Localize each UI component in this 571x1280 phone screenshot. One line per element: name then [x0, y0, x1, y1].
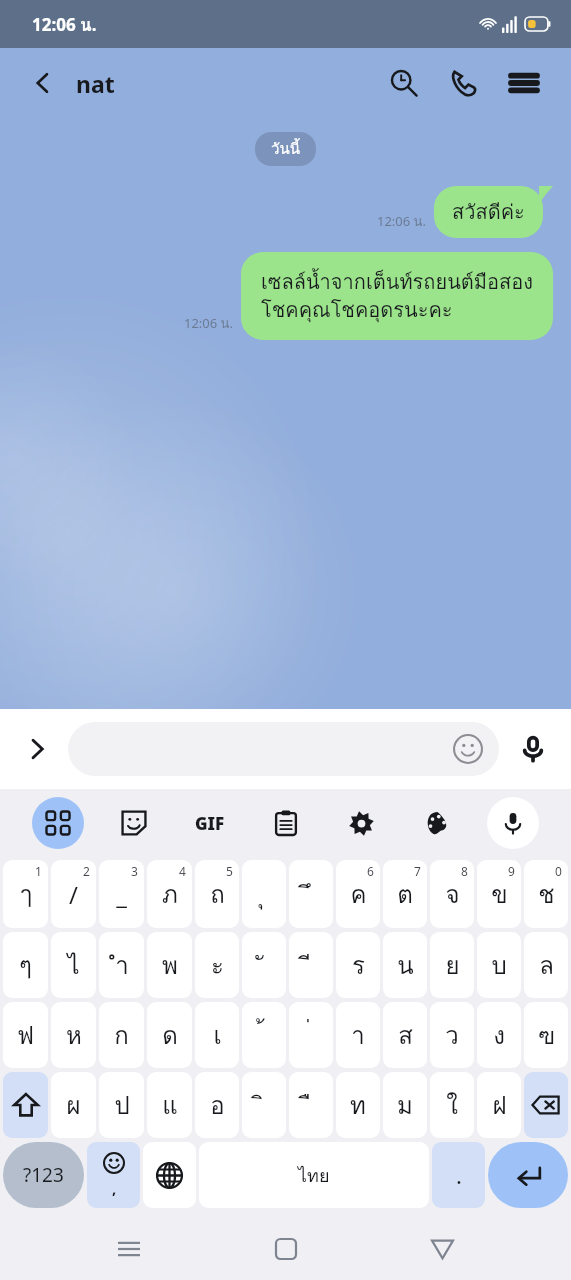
staticText: า: [351, 1016, 365, 1054]
button[interactable]: ไทย: [199, 1142, 429, 1208]
button[interactable]: GIF: [184, 797, 236, 849]
button[interactable]: ี: [289, 932, 333, 998]
button[interactable]: ต: [383, 860, 427, 928]
staticText: GIF: [195, 812, 225, 835]
button[interactable]: เ: [195, 1002, 239, 1068]
button[interactable]: สวัสดีค่ะ: [434, 186, 543, 238]
staticText: 2: [83, 863, 90, 879]
button[interactable]: า: [336, 1002, 380, 1068]
button[interactable]: ส: [383, 1002, 427, 1068]
button[interactable]: ร: [336, 932, 380, 998]
staticText: ฃ: [538, 1016, 555, 1054]
button[interactable]: เซลล์น้ำจากเต็นท์รถยนต์มือสอง โชคคุณโชคอ…: [241, 252, 553, 340]
staticText: 3: [131, 863, 138, 879]
button[interactable]: Themes: [411, 797, 463, 849]
button[interactable]: ใ: [430, 1072, 474, 1138]
button[interactable]: Shift: [3, 1072, 48, 1138]
button[interactable]: ช: [524, 860, 568, 928]
staticText: 0: [555, 863, 562, 879]
button[interactable]: Menu: [503, 62, 545, 104]
staticText: ท: [350, 1086, 366, 1124]
staticText: 5: [226, 863, 233, 879]
button[interactable]: น: [383, 932, 427, 998]
button[interactable]: ห: [51, 1002, 96, 1068]
staticText: ง: [493, 1016, 505, 1054]
button[interactable]: ื: [289, 1072, 333, 1138]
button[interactable]: Keyboard modes: [32, 797, 84, 849]
button[interactable]: ่: [289, 1002, 333, 1068]
staticText: ต: [397, 875, 413, 913]
button[interactable]: จ: [430, 860, 474, 928]
button[interactable]: ุ: [242, 860, 286, 928]
button[interactable]: nat: [76, 68, 115, 99]
button[interactable]: ค: [336, 860, 380, 928]
button[interactable]: Emoji: [87, 1142, 140, 1208]
button[interactable]: ม: [383, 1072, 427, 1138]
button[interactable]: ถ: [195, 860, 239, 928]
button[interactable]: วันนี้: [255, 132, 316, 166]
button[interactable]: Call: [443, 62, 485, 104]
staticText: วันนี้: [271, 137, 300, 161]
staticText: 8: [461, 863, 468, 879]
button[interactable]: Recent apps: [102, 1222, 156, 1276]
button[interactable]: .: [432, 1142, 485, 1208]
staticText: ไ: [67, 946, 80, 984]
button[interactable]: ้: [242, 1002, 286, 1068]
staticText: ว: [445, 1016, 459, 1054]
button[interactable]: /: [51, 860, 96, 928]
button[interactable]: Voice message: [509, 725, 557, 773]
button[interactable]: Search: [383, 62, 425, 104]
staticText: สวัสดีค่ะ: [452, 196, 525, 228]
button[interactable]: ะ: [195, 932, 239, 998]
button[interactable]: Emoji: [451, 732, 485, 766]
button[interactable]: ฝ: [477, 1072, 521, 1138]
button[interactable]: ว: [430, 1002, 474, 1068]
button[interactable]: Settings: [335, 797, 387, 849]
staticText: ภ: [162, 875, 178, 913]
button[interactable]: ?123: [3, 1142, 84, 1208]
button[interactable]: บ: [477, 932, 521, 998]
button[interactable]: Back: [415, 1222, 469, 1276]
staticText: น: [397, 946, 414, 984]
button[interactable]: Stickers: [108, 797, 160, 849]
button[interactable]: ไ: [51, 932, 96, 998]
staticText: ใ: [446, 1086, 458, 1124]
button[interactable]: ภ: [147, 860, 192, 928]
staticText: บ: [491, 946, 507, 984]
button[interactable]: _: [99, 860, 144, 928]
button[interactable]: Back: [26, 66, 60, 100]
button[interactable]: ผ: [51, 1072, 96, 1138]
button[interactable]: Emoji: [68, 722, 499, 776]
button[interactable]: ั: [242, 932, 286, 998]
staticText: ฝ: [492, 1086, 507, 1124]
button[interactable]: พ: [147, 932, 192, 998]
button[interactable]: ๆ: [3, 932, 48, 998]
button[interactable]: Home: [259, 1222, 313, 1276]
button[interactable]: Enter: [488, 1142, 568, 1208]
button[interactable]: ึ: [289, 860, 333, 928]
button[interactable]: Backspace: [524, 1072, 568, 1138]
button[interactable]: ป: [99, 1072, 144, 1138]
button[interactable]: แ: [147, 1072, 192, 1138]
button[interactable]: ย: [430, 932, 474, 998]
button[interactable]: ข: [477, 860, 521, 928]
button[interactable]: ิ: [242, 1072, 286, 1138]
button[interactable]: Change language: [143, 1142, 196, 1208]
staticText: ข: [491, 875, 508, 913]
button[interactable]: ท: [336, 1072, 380, 1138]
button[interactable]: Voice input: [487, 797, 539, 849]
button[interactable]: ๅ: [3, 860, 48, 928]
button[interactable]: ก: [99, 1002, 144, 1068]
button[interactable]: ง: [477, 1002, 521, 1068]
button[interactable]: ล: [524, 932, 568, 998]
button[interactable]: ฃ: [524, 1002, 568, 1068]
button[interactable]: Expand: [14, 726, 60, 772]
button[interactable]: อ: [195, 1072, 239, 1138]
button[interactable]: ด: [147, 1002, 192, 1068]
staticText: ?123: [23, 1162, 64, 1188]
button[interactable]: ำ: [99, 932, 144, 998]
staticText: ค: [350, 875, 367, 913]
button[interactable]: ฟ: [3, 1002, 48, 1068]
staticText: ม: [397, 1086, 413, 1124]
button[interactable]: Clipboard: [260, 797, 312, 849]
